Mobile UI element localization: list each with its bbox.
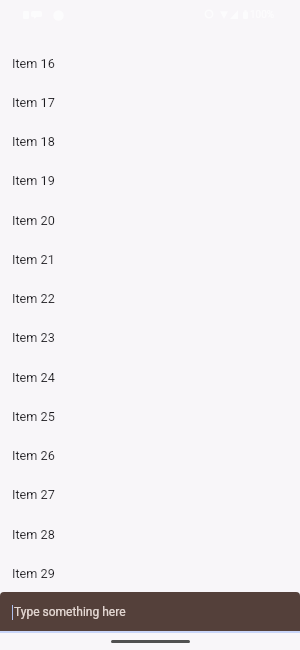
button[interactable]: Item 21 [0,240,300,279]
button[interactable]: Item 19 [0,161,300,200]
button[interactable]: Type something here [0,592,300,631]
button[interactable]: Item 26 [0,436,300,475]
staticText: Item 17 [12,95,55,110]
staticText: Item 25 [12,409,55,424]
staticText: Item 21 [12,252,55,267]
staticText: Item 22 [12,291,55,306]
staticText: Item 19 [12,173,55,188]
button[interactable]: Item 22 [0,279,300,318]
staticText: Item 16 [12,56,55,71]
button[interactable]: Item 28 [0,515,300,554]
button[interactable]: Item 16 [0,44,300,83]
staticText: Item 28 [12,527,55,542]
button[interactable]: Item 27 [0,475,300,514]
staticText: Item 27 [12,487,55,502]
button[interactable]: Item 23 [0,318,300,357]
button[interactable]: Item 17 [0,83,300,122]
button[interactable]: Item 25 [0,397,300,436]
button[interactable]: Item 18 [0,122,300,161]
button[interactable]: Item 20 [0,201,300,240]
staticText: Item 18 [12,134,55,149]
staticText: Item 26 [12,448,55,463]
button[interactable]: Item 24 [0,358,300,397]
staticText: Type something here [14,605,126,619]
staticText: Item 23 [12,330,55,345]
staticText: Item 20 [12,213,55,228]
button[interactable]: Item 29 [0,554,300,593]
staticText: Item 24 [12,370,55,385]
staticText: Item 29 [12,566,55,581]
